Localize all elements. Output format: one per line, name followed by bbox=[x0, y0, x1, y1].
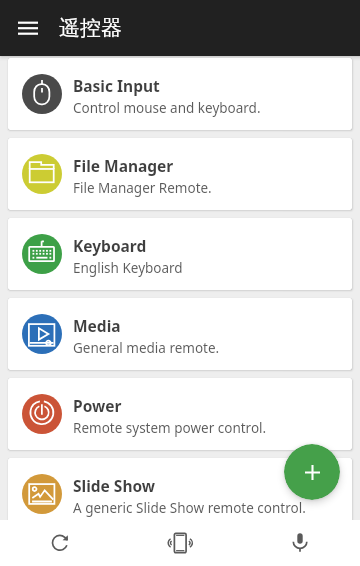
staticText: Control mouse and keyboard. bbox=[73, 99, 261, 117]
button[interactable]: Keyboard bbox=[8, 218, 352, 290]
button[interactable]: Add remote bbox=[284, 444, 340, 500]
staticText: A generic Slide Show remote control. bbox=[73, 499, 306, 517]
button[interactable]: Refresh bbox=[0, 520, 120, 566]
staticText: File Manager bbox=[73, 155, 174, 176]
button[interactable]: File Manager bbox=[8, 138, 352, 210]
staticText: File Manager Remote. bbox=[73, 179, 212, 197]
staticText: Keyboard bbox=[73, 235, 147, 256]
button[interactable]: Power bbox=[8, 378, 352, 450]
staticText: General media remote. bbox=[73, 339, 220, 357]
staticText: Slide Show bbox=[73, 475, 156, 496]
button[interactable]: Basic Input bbox=[8, 58, 352, 130]
button[interactable]: Media bbox=[8, 298, 352, 370]
staticText: Basic Input bbox=[73, 75, 160, 96]
staticText: English Keyboard bbox=[73, 259, 183, 277]
staticText: Media bbox=[73, 315, 121, 336]
button[interactable]: Connected device bbox=[120, 520, 240, 566]
staticText: 遥控器 bbox=[59, 15, 122, 41]
button[interactable]: Voice input bbox=[240, 520, 360, 566]
staticText: Remote system power control. bbox=[73, 419, 267, 437]
button[interactable]: Slide Show bbox=[8, 458, 352, 520]
staticText: Power bbox=[73, 395, 122, 416]
button[interactable]: Open navigation menu bbox=[4, 4, 52, 52]
